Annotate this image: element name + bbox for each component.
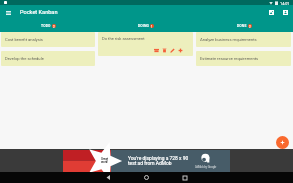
staticText: Analyze business requirements [200, 37, 257, 42]
button[interactable]: Home [141, 172, 152, 183]
button[interactable]: Account [280, 7, 291, 18]
staticText: Develop the schedule [5, 56, 44, 61]
staticText: DONE [237, 24, 247, 28]
button[interactable]: DOING [97, 19, 195, 32]
button[interactable]: Delete [161, 47, 167, 53]
button[interactable]: Back [103, 172, 114, 183]
staticText: Great work! [101, 157, 109, 163]
staticText: Pocket Kanban [20, 9, 58, 16]
button[interactable]: Screenshot [266, 7, 277, 18]
staticText: Do the risk assessment [102, 36, 145, 41]
staticText: 2 [249, 25, 251, 28]
button[interactable]: Advertisement [63, 150, 230, 172]
staticText: DOING [138, 24, 149, 28]
button[interactable]: Add card [276, 136, 289, 149]
button[interactable]: Edit [169, 47, 175, 53]
staticText: Estimate resource requirements [200, 56, 259, 61]
button[interactable]: Analyze business requirements [196, 32, 291, 47]
button[interactable]: Do the risk assessment [98, 32, 193, 56]
button[interactable]: Add [177, 47, 183, 53]
button[interactable]: Develop the schedule [1, 51, 95, 66]
staticText: 2 [53, 25, 55, 28]
button[interactable]: Menu [3, 7, 14, 18]
button[interactable]: Estimate resource requirements [196, 51, 291, 66]
button[interactable]: Cost benefit analysis [1, 32, 95, 47]
button[interactable]: DONE [195, 19, 293, 32]
staticText: You're displaying a 728 x 90 test ad fro… [128, 155, 189, 166]
button[interactable]: Recents [179, 172, 190, 183]
button[interactable]: Archive [153, 47, 159, 53]
staticText: Cost benefit analysis [5, 37, 43, 42]
staticText: AdMob by Google [195, 165, 217, 168]
staticText: 1 [151, 25, 153, 28]
button[interactable]: TODO [0, 19, 97, 32]
staticText: 14:01 [280, 1, 290, 5]
staticText: TODO [41, 24, 51, 28]
